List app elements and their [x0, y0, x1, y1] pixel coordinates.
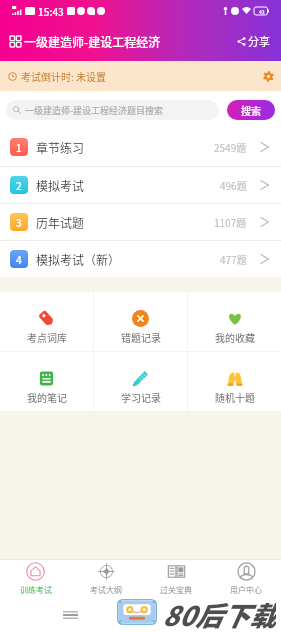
staticText: 4: [16, 252, 22, 266]
button[interactable]: 分享: [235, 27, 272, 55]
staticText: 1107题: [214, 215, 247, 229]
button[interactable]: 考点词库: [0, 292, 93, 351]
staticText: 1: [16, 140, 22, 154]
staticText: 训练考试: [20, 584, 52, 596]
staticText: 15:43: [38, 4, 64, 18]
staticText: 随机十题: [215, 390, 255, 404]
staticText: 模拟考试: [36, 177, 85, 194]
button[interactable]: 训练考试: [0, 559, 71, 598]
staticText: 我的收藏: [215, 330, 255, 344]
button[interactable]: 设置: [259, 67, 277, 85]
staticText: 过关宝典: [160, 584, 192, 596]
button[interactable]: 2: [0, 167, 281, 203]
staticText: 2549题: [214, 140, 247, 154]
staticText: 章节练习: [36, 139, 85, 156]
button[interactable]: 4: [0, 241, 281, 277]
button[interactable]: 过关宝典: [141, 559, 211, 598]
staticText: 学习记录: [121, 390, 161, 404]
staticText: 考试倒计时: 未设置: [21, 69, 107, 83]
staticText: 496题: [220, 178, 247, 192]
staticText: 一级建造师-建设工程经济题目搜索: [25, 104, 164, 117]
staticText: 我的笔记: [27, 390, 67, 404]
staticText: 历年试题: [36, 214, 85, 231]
staticText: 477题: [220, 252, 247, 266]
staticText: 模拟考试（新）: [36, 251, 121, 268]
staticText: 考试大纲: [90, 584, 122, 596]
staticText: 分享: [248, 33, 270, 49]
button[interactable]: 用户中心: [211, 559, 281, 598]
staticText: 用户中心: [230, 584, 262, 596]
staticText: 43: [259, 8, 265, 15]
button[interactable]: 错题记录: [94, 292, 187, 351]
button[interactable]: 我的收藏: [188, 292, 281, 351]
button[interactable]: 搜索: [227, 100, 275, 120]
button[interactable]: 3: [0, 204, 281, 240]
button[interactable]: 学习记录: [94, 352, 187, 411]
button[interactable]: 1: [0, 128, 281, 166]
staticText: 2: [16, 178, 22, 192]
staticText: 错题记录: [121, 330, 161, 344]
button[interactable]: 一级建造师-建设工程经济题目搜索: [6, 100, 219, 120]
button[interactable]: 随机十题: [188, 352, 281, 411]
staticText: 考点词库: [27, 330, 67, 344]
staticText: 一级建造师-建设工程经济: [24, 33, 161, 50]
button[interactable]: 考试大纲: [71, 559, 141, 598]
staticText: 搜索: [241, 103, 261, 117]
button[interactable]: 我的笔记: [0, 352, 93, 411]
staticText: 3: [16, 215, 22, 229]
staticText: 80后下载: [162, 595, 276, 629]
